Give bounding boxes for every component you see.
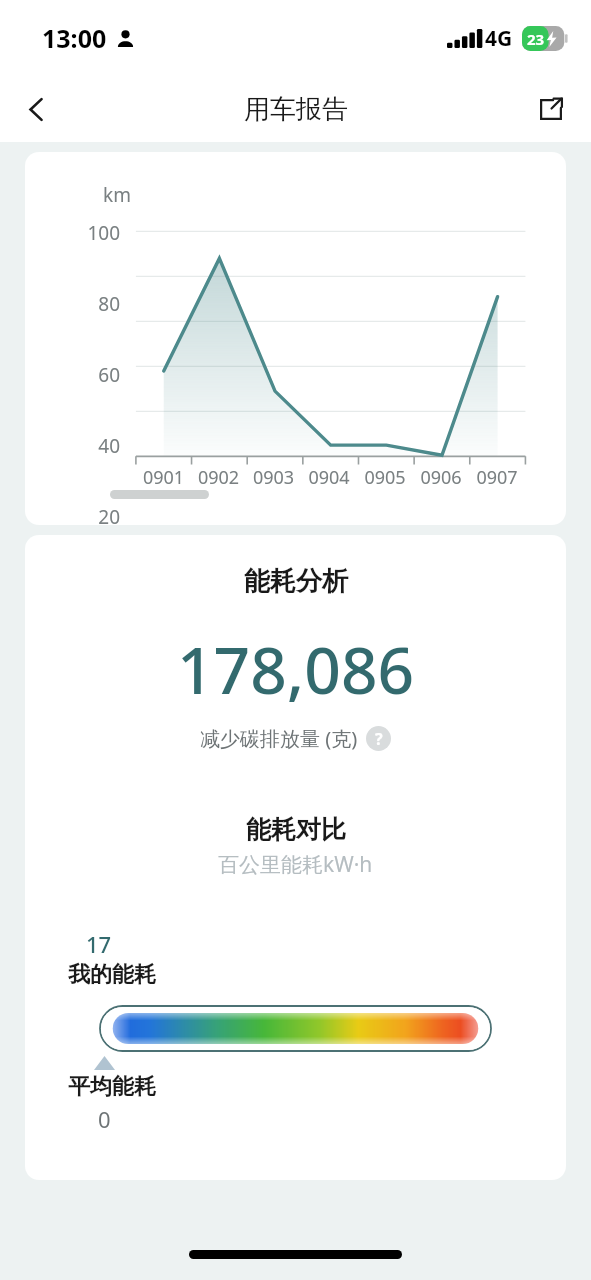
staticText: 0904	[301, 465, 357, 490]
button[interactable]: Help	[366, 726, 391, 751]
staticText: 能耗对比	[246, 814, 346, 845]
staticText: 我的能耗	[68, 961, 156, 989]
staticText: 23	[527, 29, 545, 49]
staticText: 0902	[191, 465, 246, 490]
button[interactable]: km	[25, 152, 566, 525]
staticText: 40	[45, 433, 120, 459]
staticText: 0906	[413, 465, 469, 490]
staticText: 用车报告	[244, 93, 348, 126]
staticText: 60	[45, 362, 120, 388]
staticText: 13:00	[42, 21, 107, 55]
staticText: 0903	[246, 465, 301, 490]
staticText: 80	[45, 291, 120, 317]
staticText: 17	[86, 929, 112, 959]
staticText: 178,086	[177, 626, 415, 713]
staticText: 平均能耗	[68, 1073, 156, 1101]
button[interactable]: Share	[527, 85, 575, 133]
staticText: 0901	[136, 465, 191, 490]
staticText: 0905	[357, 465, 413, 490]
staticText: 百公里能耗kW·h	[218, 850, 373, 879]
staticText: 100	[45, 220, 120, 246]
button[interactable]: Back	[12, 85, 60, 133]
staticText: 0907	[469, 465, 525, 490]
staticText: 0	[98, 1104, 111, 1134]
staticText: 20	[45, 504, 120, 525]
staticText: 能耗分析	[244, 565, 348, 598]
staticText: 减少碳排放量 (克)	[200, 725, 358, 752]
staticText: ?	[375, 728, 383, 750]
staticText: km	[103, 182, 131, 208]
button[interactable]: 能耗分析	[25, 535, 566, 1180]
staticText: 4G	[485, 24, 513, 53]
